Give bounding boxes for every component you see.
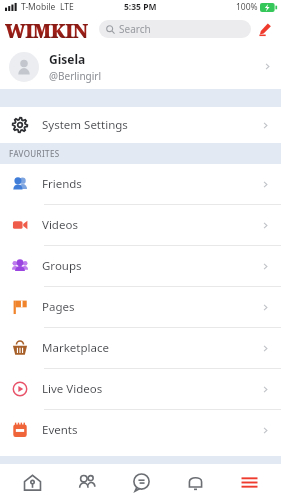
button[interactable]: WIMKIN xyxy=(5,18,95,40)
button[interactable]: Friends xyxy=(64,465,108,499)
staticText: Videos xyxy=(42,217,261,233)
button[interactable]: Friends xyxy=(0,164,281,204)
staticText: Gisela xyxy=(49,51,86,67)
staticText: 100% xyxy=(236,1,258,13)
button[interactable]: Menu xyxy=(227,465,271,499)
button[interactable]: Messages xyxy=(119,465,163,499)
staticText: Groups xyxy=(42,258,261,274)
staticText: 5:35 PM xyxy=(124,1,157,13)
staticText: System Settings xyxy=(42,117,261,133)
button[interactable]: Search xyxy=(99,20,251,38)
staticText: Marketplace xyxy=(42,340,261,356)
staticText: T-Mobile xyxy=(21,1,56,13)
button[interactable]: Groups xyxy=(0,246,281,286)
staticText: Live Videos xyxy=(42,381,261,397)
button[interactable]: Compose post xyxy=(251,15,279,43)
button[interactable]: Live Videos xyxy=(0,369,281,409)
staticText: FAVOURITES xyxy=(9,148,60,159)
button[interactable]: Gisela xyxy=(0,44,281,89)
staticText: Events xyxy=(42,422,261,438)
staticText: Friends xyxy=(42,176,261,192)
button[interactable]: Pages xyxy=(0,287,281,327)
button[interactable]: Notifications xyxy=(173,465,217,499)
staticText: Search xyxy=(119,22,151,36)
staticText: WIMKIN xyxy=(5,18,88,40)
button[interactable]: Home xyxy=(10,465,54,499)
staticText: LTE xyxy=(60,1,74,13)
button[interactable]: Events xyxy=(0,410,281,450)
staticText: Pages xyxy=(42,299,261,315)
button[interactable]: Marketplace xyxy=(0,328,281,368)
staticText: @Berlingirl xyxy=(49,69,102,83)
button[interactable]: System Settings xyxy=(0,107,281,143)
button[interactable]: Videos xyxy=(0,205,281,245)
